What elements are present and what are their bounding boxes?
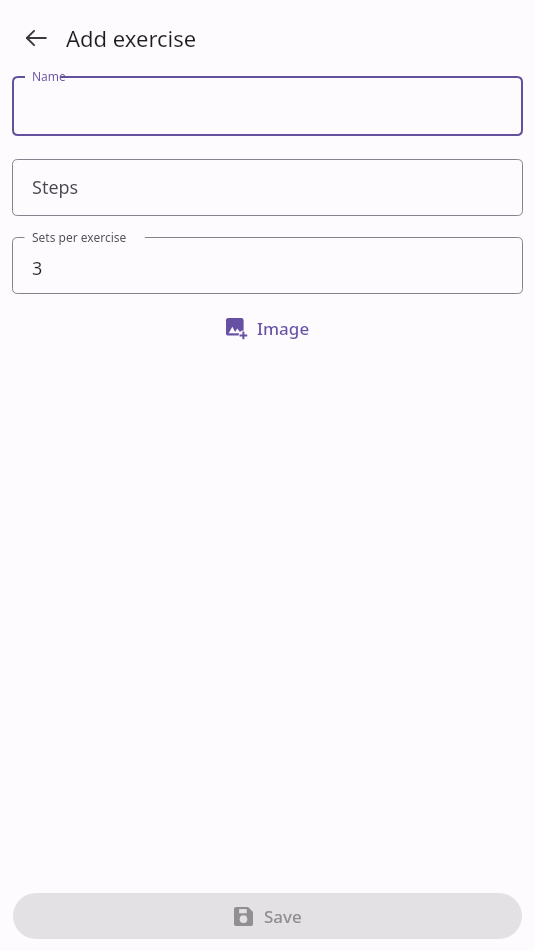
staticText: Image bbox=[257, 317, 310, 340]
button[interactable]: Name bbox=[12, 76, 523, 136]
button[interactable]: Steps bbox=[12, 159, 523, 216]
button[interactable]: Image bbox=[218, 311, 318, 346]
button[interactable]: Save bbox=[13, 893, 522, 939]
button[interactable]: Back bbox=[13, 15, 59, 61]
staticText: 3 bbox=[32, 256, 43, 281]
staticText: Name bbox=[32, 68, 66, 84]
staticText: Save bbox=[264, 905, 302, 928]
staticText: Sets per exercise bbox=[32, 229, 127, 245]
staticText: Steps bbox=[32, 175, 79, 200]
button[interactable]: 3 bbox=[12, 237, 523, 294]
staticText: Add exercise bbox=[66, 23, 197, 53]
